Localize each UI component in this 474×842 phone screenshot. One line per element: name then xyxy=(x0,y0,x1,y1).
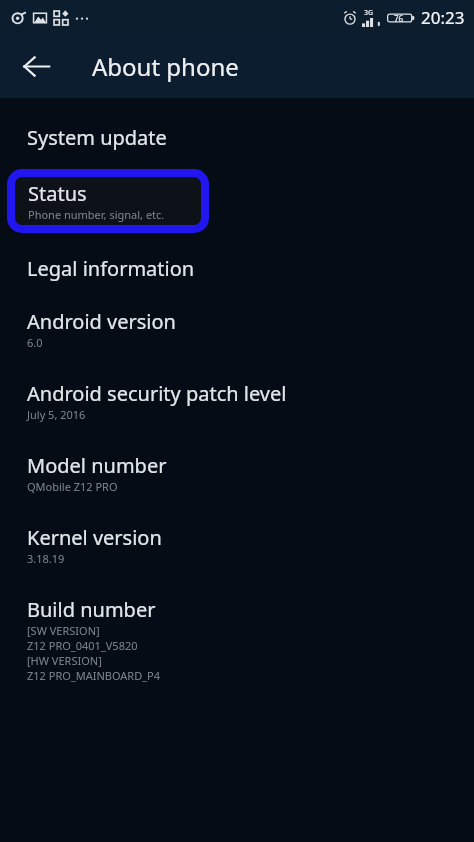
staticText: Build number xyxy=(27,596,156,623)
staticText: Z12 PRO_0401_V5820 xyxy=(27,638,138,653)
staticText: 6.0 xyxy=(27,335,43,350)
staticText: Model number xyxy=(27,452,167,479)
button[interactable]: Back xyxy=(9,39,63,93)
button[interactable]: Model number xyxy=(0,444,474,502)
staticText: Phone number, signal, etc. xyxy=(28,207,165,222)
staticText: 3.18.19 xyxy=(27,551,65,566)
button[interactable]: Legal information xyxy=(0,247,474,290)
staticText: System update xyxy=(27,124,167,151)
button[interactable]: Status xyxy=(15,177,201,225)
button[interactable]: Kernel version xyxy=(0,516,474,574)
staticText: [HW VERSION] xyxy=(27,653,102,668)
staticText: QMobile Z12 PRO xyxy=(27,479,118,494)
staticText: 20:23 xyxy=(421,6,465,29)
staticText: Z12 PRO_MAINBOARD_P4 xyxy=(27,668,161,683)
staticText: Status xyxy=(28,180,87,207)
staticText: 76 xyxy=(394,13,404,24)
staticText: 3G xyxy=(364,8,374,18)
button[interactable]: Build number xyxy=(0,588,474,691)
button[interactable]: System update xyxy=(0,116,474,159)
button[interactable]: Android version xyxy=(0,300,474,358)
staticText: July 5, 2016 xyxy=(27,407,86,422)
staticText: Android security patch level xyxy=(27,380,287,407)
staticText: [SW VERSION] xyxy=(27,623,100,638)
staticText: Android version xyxy=(27,308,176,335)
staticText: Kernel version xyxy=(27,524,162,551)
staticText: About phone xyxy=(92,50,239,83)
button[interactable]: Android security patch level xyxy=(0,372,474,430)
staticText: Legal information xyxy=(27,255,195,282)
